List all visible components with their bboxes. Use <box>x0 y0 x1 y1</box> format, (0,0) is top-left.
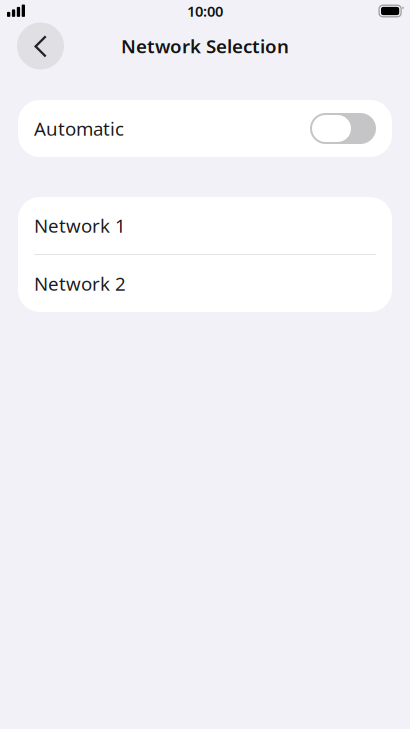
staticText: Automatic <box>34 116 124 141</box>
staticText: Network 2 <box>34 271 126 296</box>
button[interactable]: Network 1 <box>18 197 392 254</box>
button[interactable]: Automatic <box>18 100 392 157</box>
staticText: Network 1 <box>34 213 126 238</box>
button[interactable]: Back <box>17 22 64 69</box>
staticText: Network Selection <box>121 34 289 58</box>
staticText: 10:00 <box>187 1 223 21</box>
button[interactable]: Network 2 <box>18 255 392 312</box>
